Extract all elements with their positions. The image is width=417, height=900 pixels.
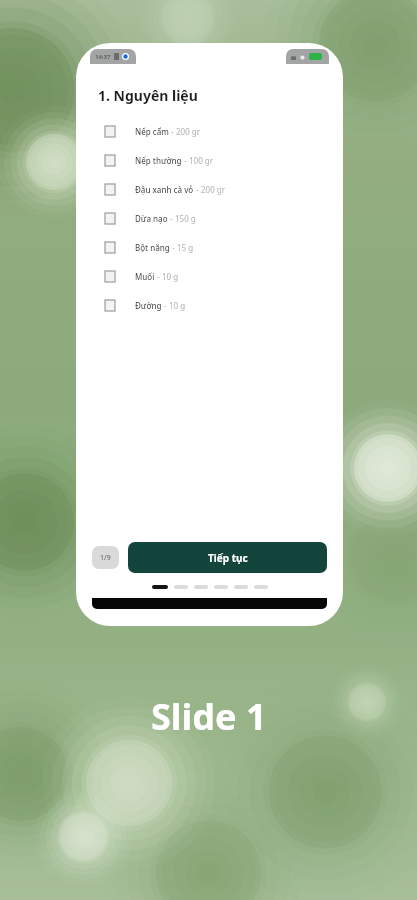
button[interactable]: Dừa nạo (76, 204, 343, 233)
button[interactable]: Bột năng (76, 233, 343, 262)
staticText: 1/9 (100, 553, 111, 563)
staticText: - (194, 184, 201, 195)
staticText: 1. Nguyên liệu (98, 86, 198, 105)
button[interactable]: Đậu xanh cà vỏ (76, 175, 343, 204)
button[interactable]: Nếp thường (76, 146, 343, 175)
staticText: - (182, 155, 189, 166)
staticText: 14:37 (95, 53, 111, 61)
button[interactable]: Muối (76, 262, 343, 291)
button[interactable]: Nếp cẩm (76, 117, 343, 146)
staticText: Muối (135, 271, 155, 282)
staticText: 200 gr (176, 126, 201, 137)
button[interactable]: Đường (76, 291, 343, 320)
staticText: - (170, 242, 177, 253)
staticText: 10 g (169, 300, 186, 311)
staticText: Dừa nạo (135, 213, 168, 224)
staticText: Slide 1 (151, 692, 267, 741)
staticText: - (168, 213, 175, 224)
staticText: - (155, 271, 162, 282)
staticText: Đường (135, 300, 162, 311)
staticText: - (169, 126, 176, 137)
staticText: Nếp cẩm (135, 126, 169, 137)
staticText: Nếp thường (135, 155, 182, 166)
staticText: 10 g (162, 271, 179, 282)
staticText: Đậu xanh cà vỏ (135, 184, 194, 195)
staticText: 100 gr (189, 155, 214, 166)
staticText: 200 gr (201, 184, 226, 195)
button[interactable]: Tiếp tục (128, 542, 327, 573)
staticText: 15 g (177, 242, 194, 253)
staticText: Bột năng (135, 242, 170, 253)
staticText: 150 g (175, 213, 196, 224)
staticText: Tiếp tục (208, 551, 248, 565)
staticText: - (162, 300, 169, 311)
button[interactable]: 1/9 (92, 546, 119, 569)
